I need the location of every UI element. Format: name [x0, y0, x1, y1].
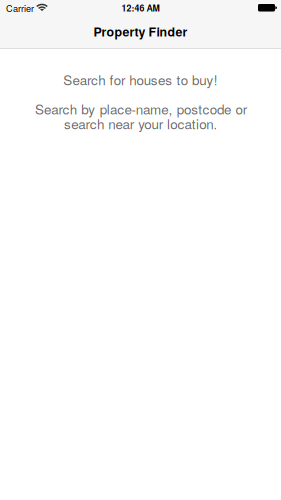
staticText: Carrier: [6, 1, 34, 15]
staticText: Property Finder: [93, 23, 187, 40]
staticText: Search by place-name, postcode or search…: [35, 99, 246, 133]
staticText: 12:46 AM: [121, 2, 159, 14]
navigationBar: Property Finder: [0, 20, 281, 49]
staticText: Search for houses to buy!: [63, 70, 218, 89]
